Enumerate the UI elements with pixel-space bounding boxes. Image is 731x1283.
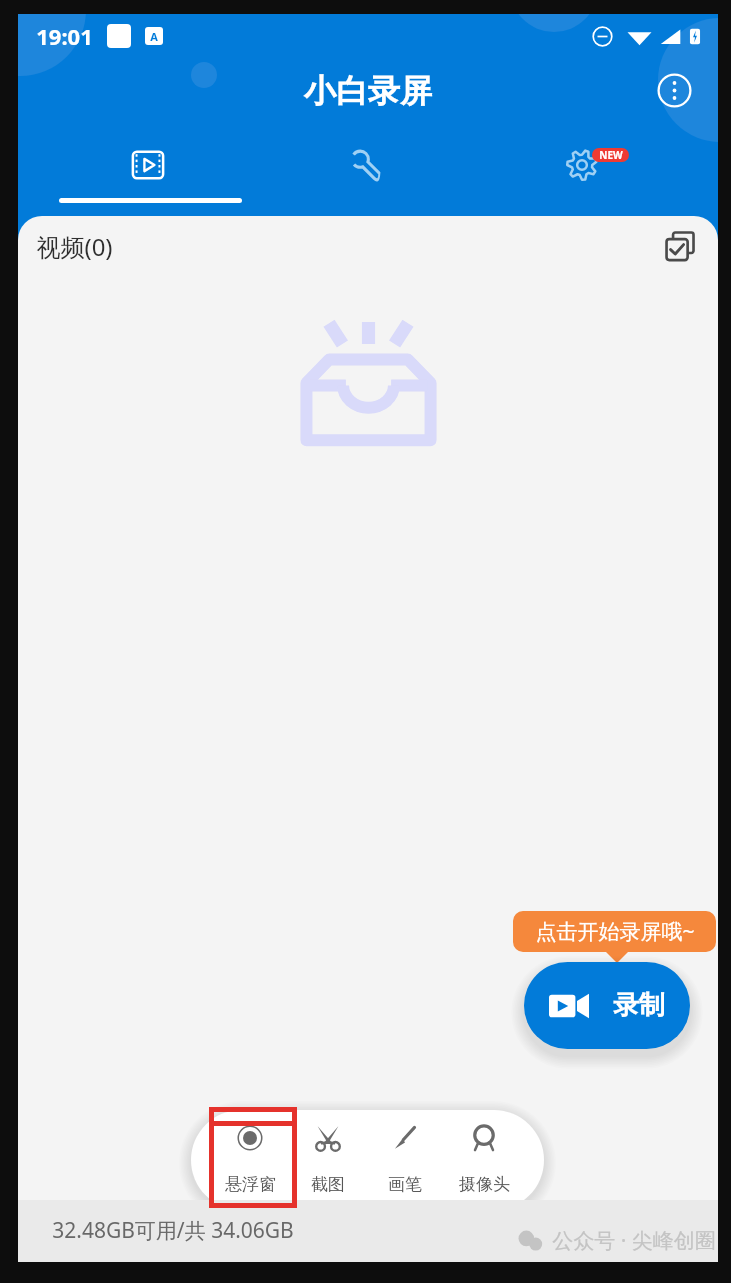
button[interactable]: 录制 — [524, 962, 690, 1049]
button[interactable]: Settings tab — [522, 140, 642, 210]
staticText: 摄像头 — [459, 1174, 510, 1195]
button[interactable]: 摄像头 — [445, 1110, 523, 1200]
staticText: 截图 — [311, 1174, 345, 1195]
button[interactable]: 画笔 — [366, 1110, 444, 1200]
staticText: 32.48GB可用/共 34.06GB — [52, 1216, 294, 1245]
staticText: NEW — [599, 148, 623, 162]
staticText: 小白录屏 — [304, 71, 432, 111]
button[interactable]: 截图 — [289, 1110, 367, 1200]
staticText: 公众号 · 尖峰创圈 — [552, 1226, 716, 1255]
button[interactable]: Tools tab — [306, 140, 426, 210]
staticText: 悬浮窗 — [225, 1174, 276, 1195]
staticText: 录制 — [613, 989, 665, 1022]
button[interactable]: 点击开始录屏哦~ — [513, 911, 716, 952]
button[interactable]: More options — [652, 68, 696, 112]
button[interactable]: 悬浮窗 — [211, 1110, 289, 1200]
button[interactable]: Select all — [658, 224, 702, 268]
staticText: 19:01 — [36, 21, 93, 51]
staticText: 画笔 — [388, 1174, 422, 1195]
staticText: 点击开始录屏哦~ — [535, 917, 695, 946]
staticText: 视频(0) — [36, 230, 113, 263]
button[interactable]: Videos tab — [88, 140, 208, 210]
staticText: A — [150, 29, 158, 44]
